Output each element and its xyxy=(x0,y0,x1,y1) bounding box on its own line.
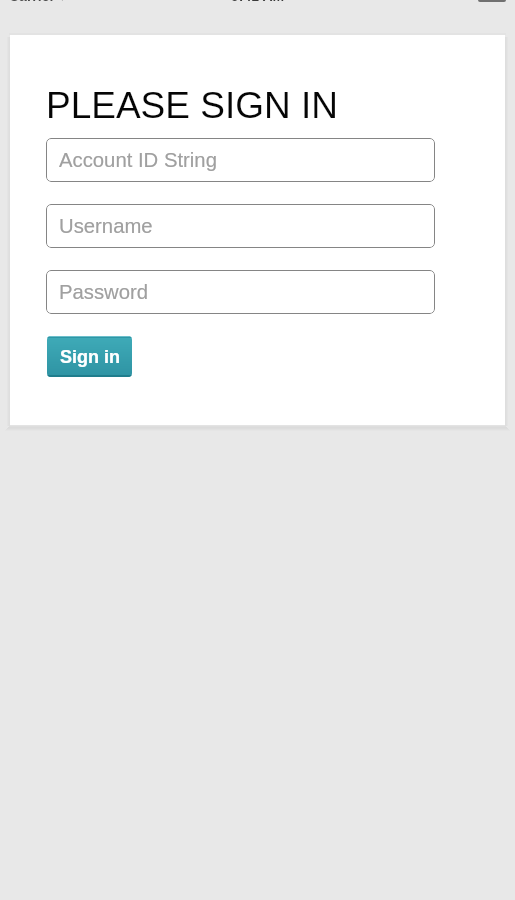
other: Battery xyxy=(478,0,506,2)
button[interactable]: Sign in xyxy=(47,336,132,377)
button[interactable]: Username xyxy=(46,204,435,248)
staticText: Carrier ▾ xyxy=(9,0,66,4)
staticText: Username xyxy=(59,215,153,238)
staticText: Password xyxy=(59,281,149,304)
button[interactable]: Account ID String xyxy=(46,138,435,182)
staticText: 9:41 AM xyxy=(231,0,285,4)
staticText: Account ID String xyxy=(59,149,217,172)
staticText: PLEASE SIGN IN xyxy=(46,85,338,126)
button[interactable]: Password xyxy=(46,270,435,314)
staticText: Sign in xyxy=(60,347,120,367)
